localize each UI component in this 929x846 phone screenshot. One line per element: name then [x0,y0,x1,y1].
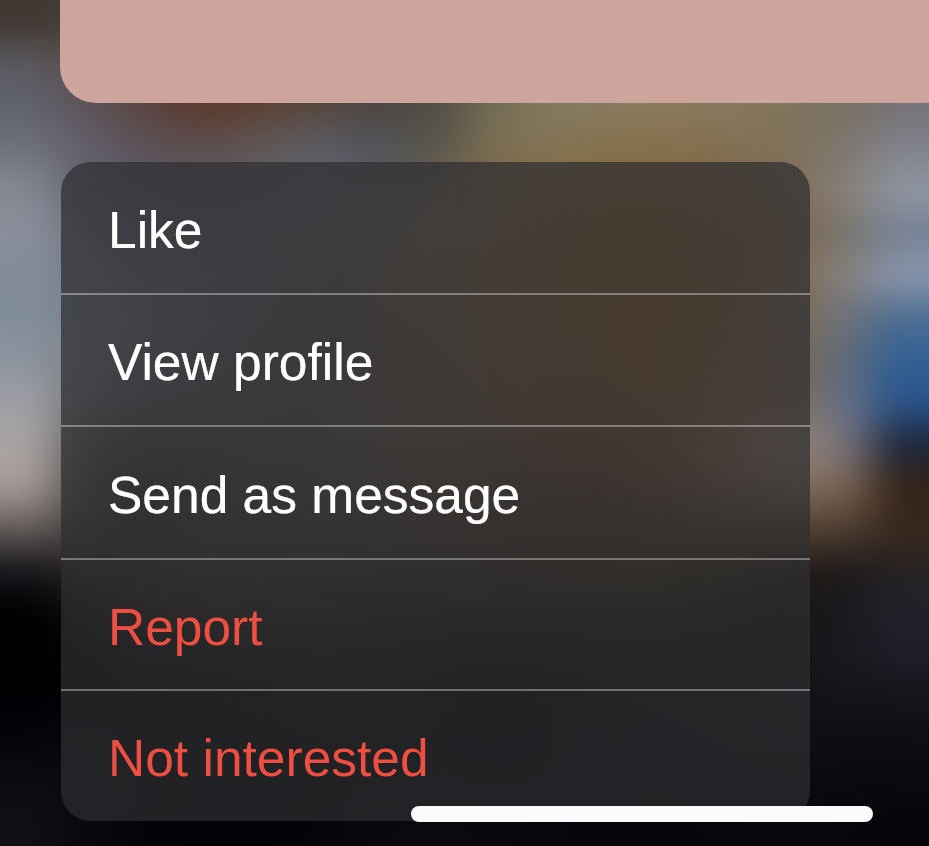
button[interactable]: Report [61,560,810,689]
button[interactable]: Send as message [61,427,810,558]
staticText: Report [108,598,263,656]
staticText: View profile [108,333,374,391]
button[interactable]: Like [61,162,810,293]
staticText: Not interested [108,729,429,787]
staticText: Like [108,201,203,259]
staticText: Send as message [108,466,521,524]
button[interactable]: View profile [61,295,810,425]
button[interactable]: Not interested [61,691,810,821]
